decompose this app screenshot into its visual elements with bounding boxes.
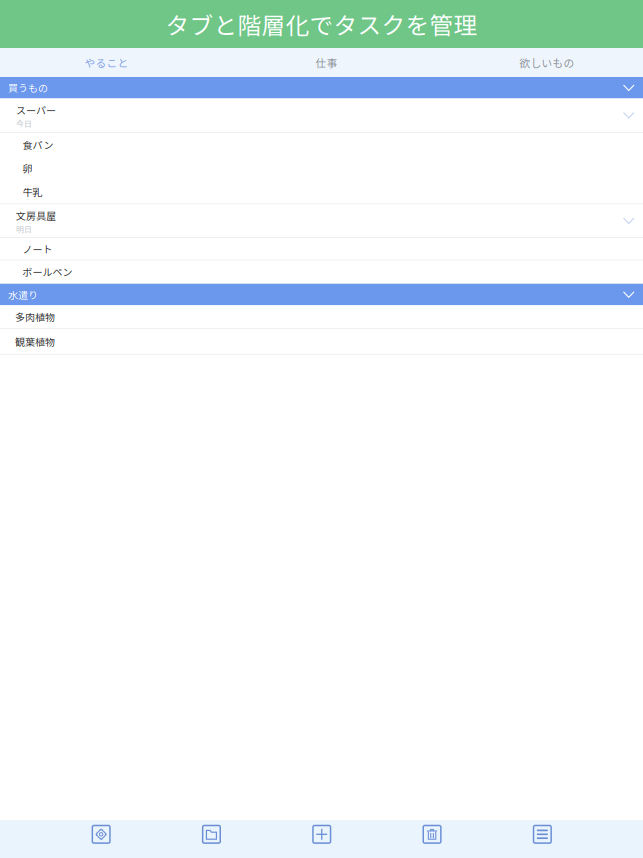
staticText: 買うもの xyxy=(8,80,48,95)
staticText: スーパー xyxy=(16,103,56,117)
button[interactable]: 牛乳 xyxy=(0,180,643,203)
staticText: 明日 xyxy=(16,223,32,235)
button[interactable]: 欲しいもの xyxy=(440,48,643,77)
button[interactable]: Settings xyxy=(46,814,156,858)
button[interactable]: スーパー xyxy=(0,98,643,132)
staticText: タブと階層化でタスクを管理 xyxy=(165,7,477,41)
button[interactable]: やること xyxy=(0,48,213,77)
staticText: 牛乳 xyxy=(22,184,42,199)
button[interactable]: Add xyxy=(267,814,377,858)
button[interactable]: ノート xyxy=(0,238,643,260)
staticText: 卵 xyxy=(22,161,32,175)
staticText: やること xyxy=(84,55,128,70)
staticText: 仕事 xyxy=(315,55,337,70)
staticText: 食パン xyxy=(22,137,53,152)
button[interactable]: 水遣り xyxy=(0,284,643,305)
button[interactable]: 仕事 xyxy=(213,48,440,77)
button[interactable]: 食パン xyxy=(0,133,643,156)
button[interactable]: ボールペン xyxy=(0,261,643,283)
button[interactable]: Folders xyxy=(156,814,267,858)
staticText: ボールペン xyxy=(22,264,72,279)
button[interactable]: 観葉植物 xyxy=(0,329,643,354)
staticText: 多肉植物 xyxy=(15,309,55,324)
staticText: 観葉植物 xyxy=(15,334,55,349)
button[interactable]: 買うもの xyxy=(0,77,643,98)
button[interactable]: 卵 xyxy=(0,156,643,180)
staticText: 文房具屋 xyxy=(16,208,56,223)
button[interactable]: 文房具屋 xyxy=(0,204,643,237)
button[interactable]: 多肉植物 xyxy=(0,305,643,328)
staticText: 水遣り xyxy=(8,287,38,302)
staticText: ノート xyxy=(22,242,52,256)
button[interactable]: List xyxy=(487,814,597,858)
staticText: 今日 xyxy=(16,117,32,129)
button[interactable]: Delete xyxy=(377,814,487,858)
staticText: 欲しいもの xyxy=(519,55,574,70)
